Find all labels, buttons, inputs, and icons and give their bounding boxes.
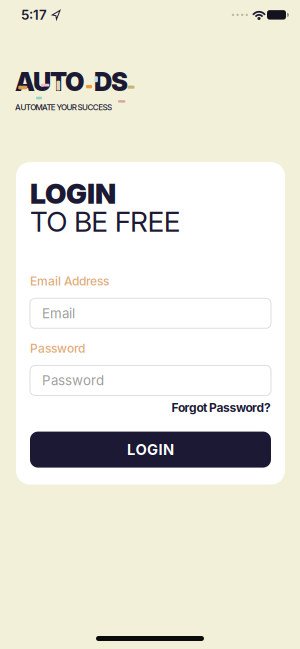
- staticText: Password: [42, 373, 104, 388]
- staticText: AUTO: [15, 67, 84, 97]
- button[interactable]: LOGIN: [30, 432, 271, 468]
- staticText: Password: [30, 341, 85, 355]
- staticText: Forgot Password?: [171, 400, 271, 415]
- staticText: LOGIN: [127, 441, 174, 458]
- button[interactable]: Email: [30, 298, 271, 328]
- staticText: TO BE FREE: [30, 205, 181, 238]
- staticText: LOGIN: [30, 177, 116, 210]
- button[interactable]: Forgot Password?: [171, 400, 271, 415]
- staticText: DS: [94, 67, 128, 97]
- button[interactable]: Password: [30, 365, 271, 395]
- staticText: 5:17: [21, 7, 47, 23]
- staticText: Email: [42, 305, 75, 321]
- staticText: Email Address: [30, 274, 109, 288]
- staticText: AUTOMATE YOUR SUCCESS: [15, 103, 112, 112]
